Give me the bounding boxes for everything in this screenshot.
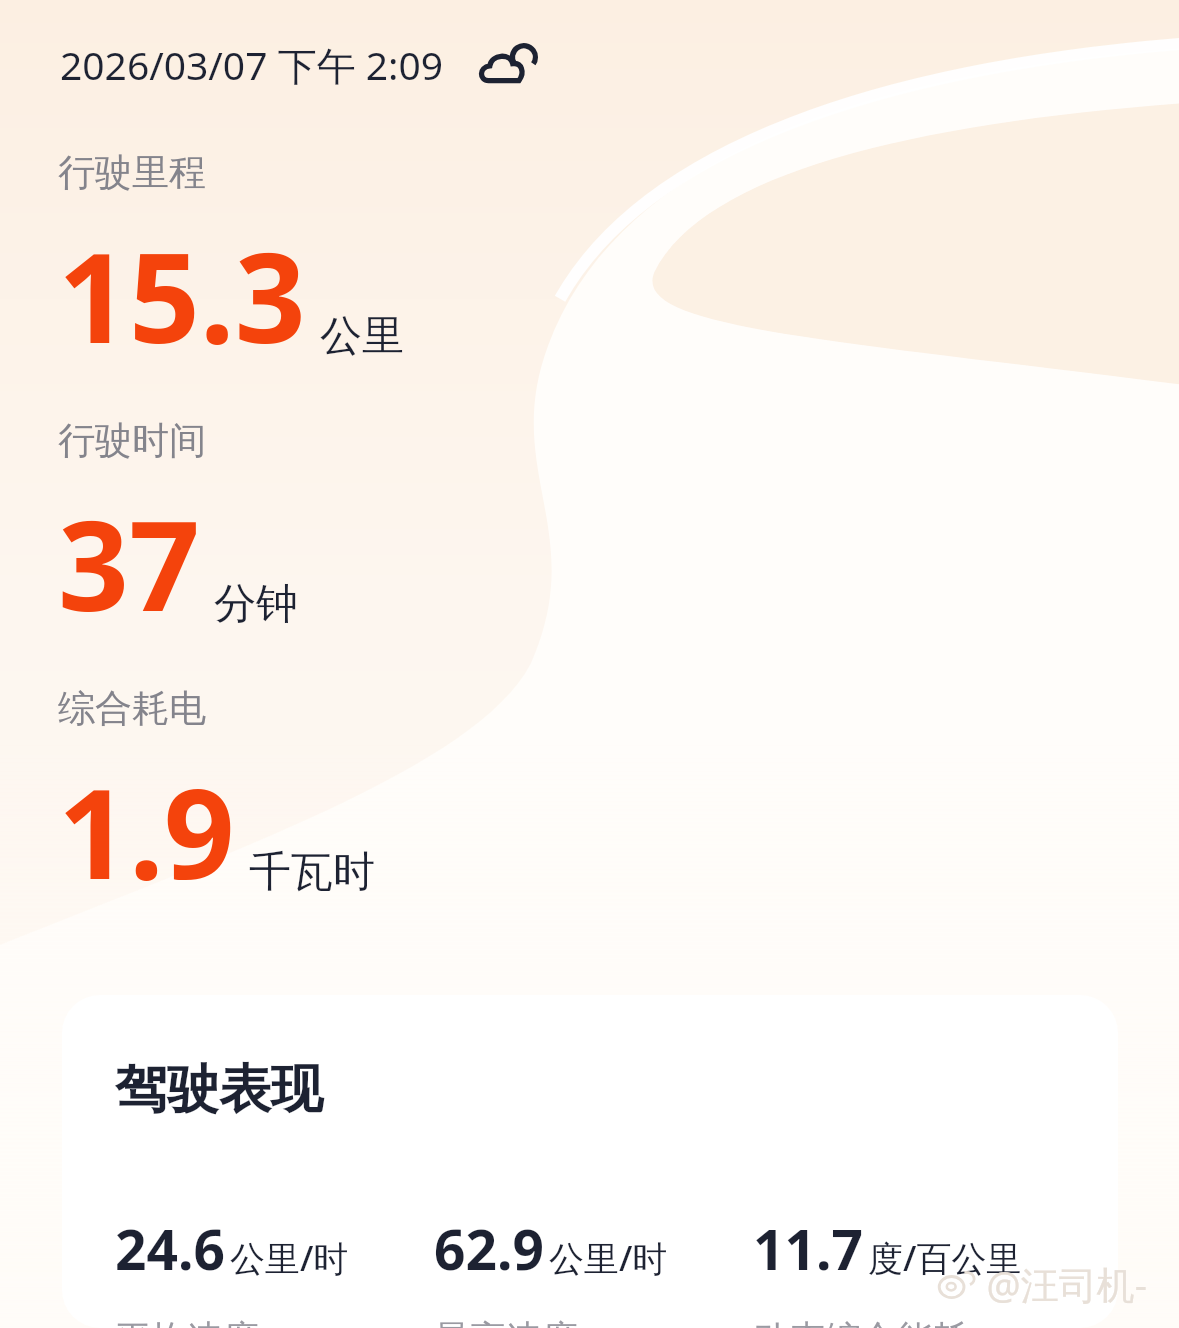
button[interactable]: 2026/03/07 下午 2:09 — [60, 38, 1139, 91]
staticText: 2026/03/07 下午 2:09 — [60, 38, 444, 91]
staticText: 37 — [58, 478, 200, 647]
button[interactable]: 行驶时间 — [58, 417, 1139, 647]
staticText: @汪司机- — [986, 1258, 1147, 1310]
staticText: 度/百公里 — [868, 1234, 1022, 1282]
staticText: 动态综合能耗 — [753, 1316, 969, 1328]
staticText: 平均速度 — [115, 1316, 259, 1328]
button[interactable]: 62.9 — [434, 1211, 753, 1328]
button[interactable]: 行驶里程 — [58, 149, 1139, 379]
staticText: 62.9 — [434, 1211, 544, 1286]
staticText: 分钟 — [214, 578, 298, 631]
staticText: 行驶时间 — [58, 417, 206, 464]
staticText: 24.6 — [115, 1211, 225, 1286]
staticText: 综合耗电 — [58, 685, 206, 732]
button[interactable]: 驾驶表现 — [62, 995, 1118, 1328]
button[interactable]: 11.7 — [753, 1211, 1098, 1328]
staticText: 公里/时 — [230, 1234, 349, 1282]
staticText: 行驶里程 — [58, 149, 206, 196]
button[interactable]: 24.6 — [115, 1211, 434, 1328]
button[interactable]: 综合耗电 — [58, 685, 1139, 915]
staticText: 公里/时 — [549, 1234, 668, 1282]
staticText: 最高速度 — [434, 1316, 578, 1328]
staticText: 公里 — [320, 310, 404, 363]
staticText: 15.3 — [58, 210, 306, 379]
other: Weather: partly cloudy — [478, 42, 540, 88]
staticText: 千瓦时 — [249, 846, 375, 899]
staticText: 1.9 — [58, 746, 235, 915]
staticText: 驾驶表现 — [115, 1057, 323, 1123]
staticText: 11.7 — [753, 1211, 863, 1286]
